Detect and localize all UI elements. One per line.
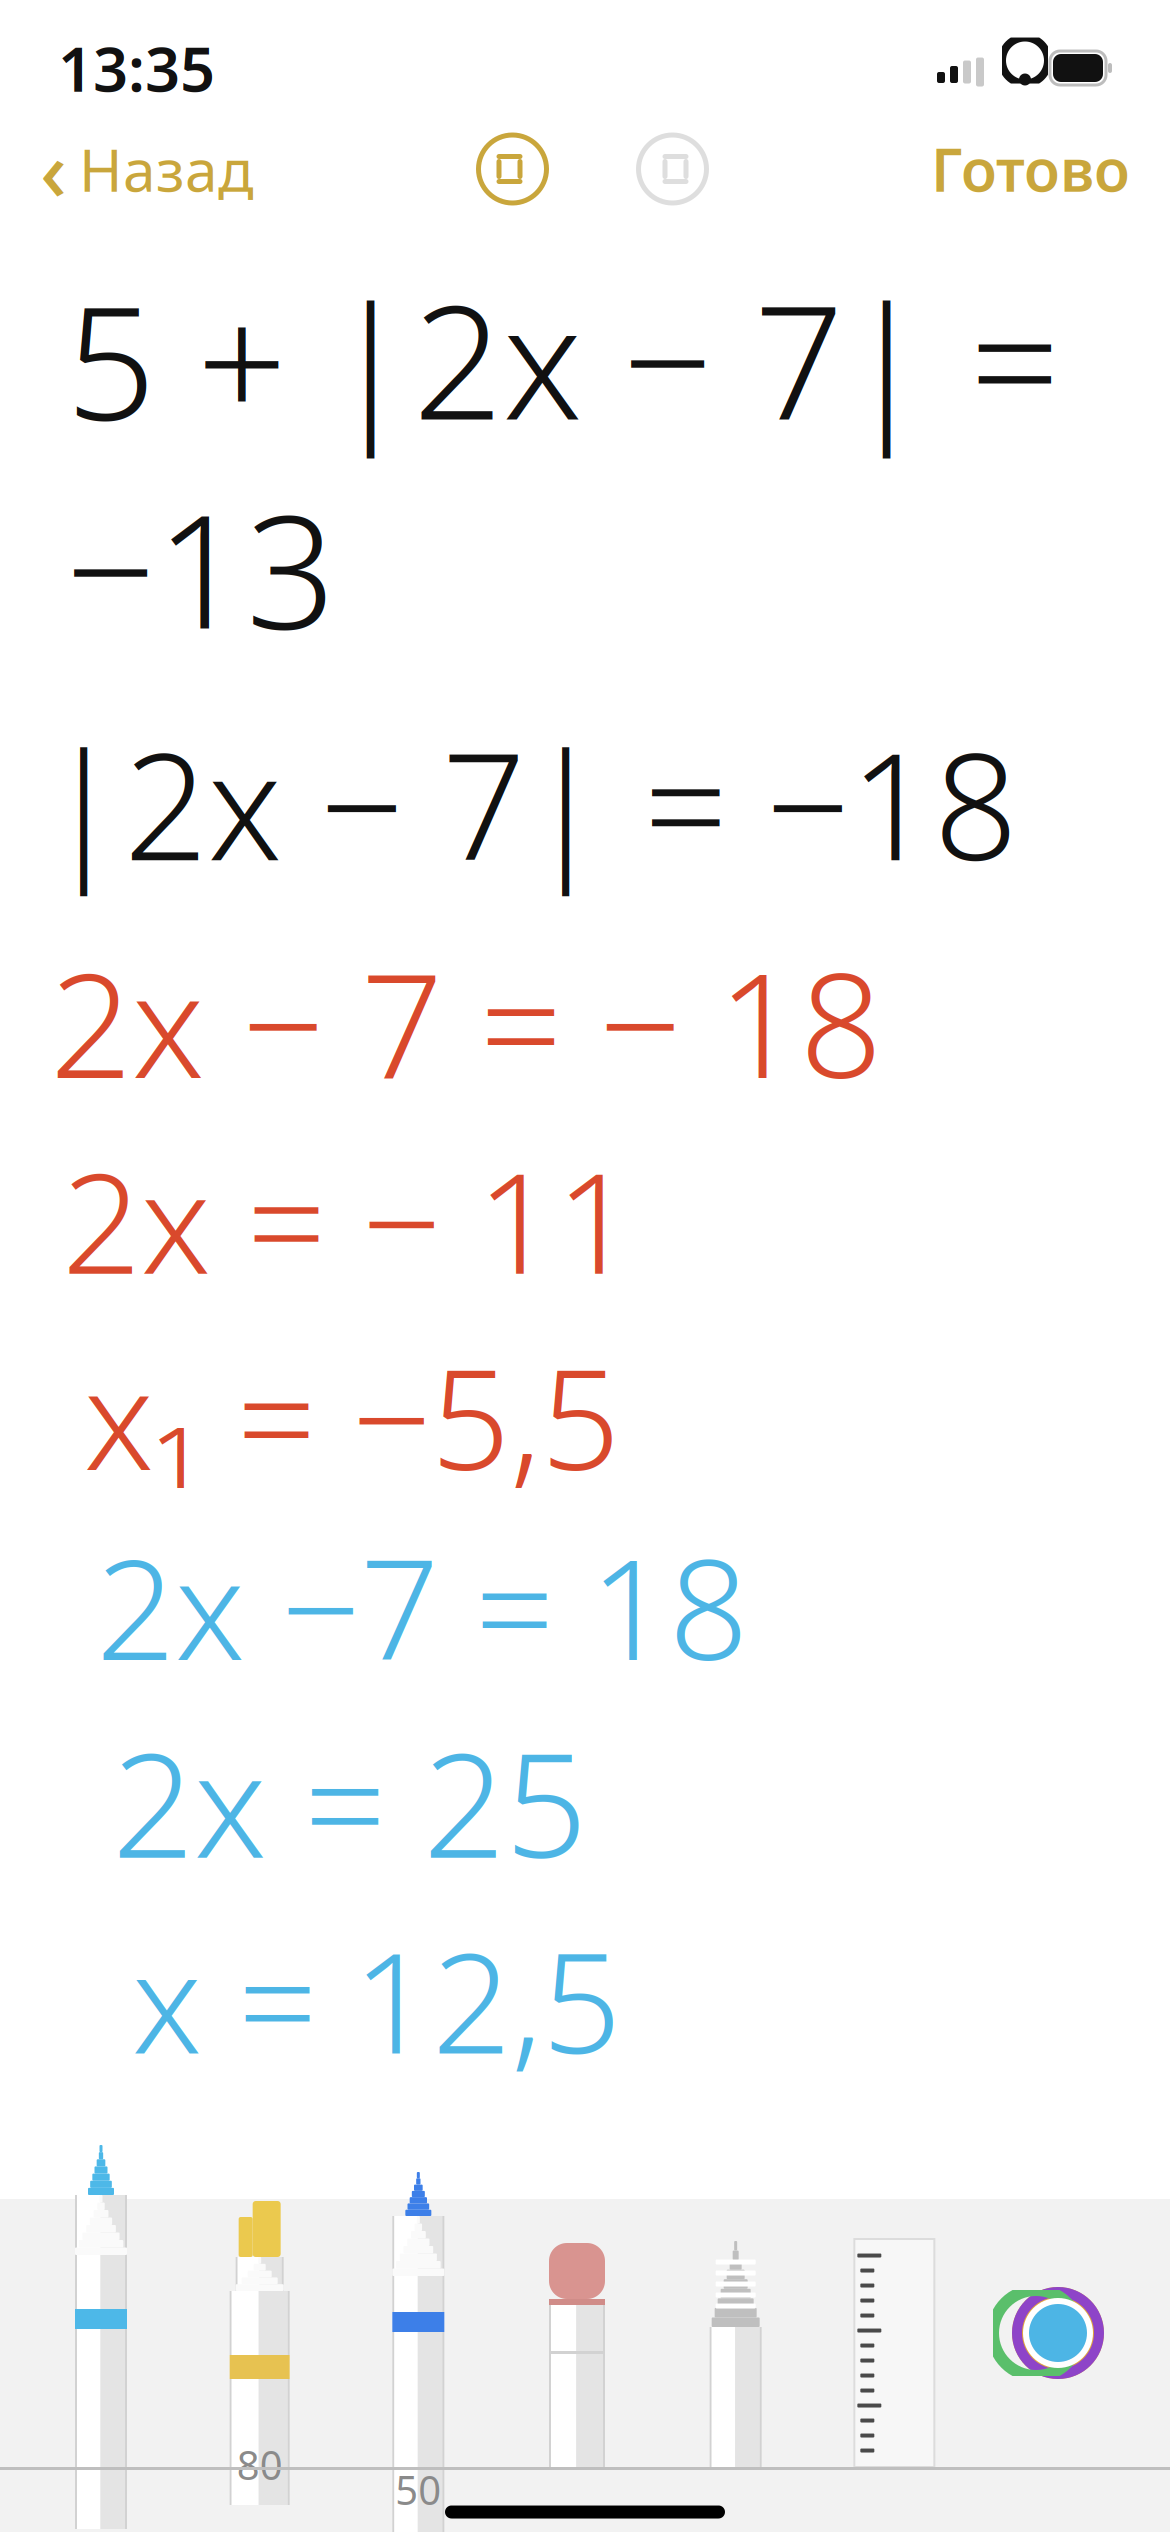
staticText: x₁ = −5,5 <box>84 1324 620 1508</box>
staticText: 2x = − 11 <box>62 1128 635 1312</box>
staticText: 13:35 <box>58 27 215 109</box>
button[interactable]: Лассо <box>693 2199 779 2467</box>
staticText: 80 <box>237 2438 283 2491</box>
staticText: x = 12,5 <box>132 1907 621 2092</box>
staticText: Готово <box>931 130 1130 208</box>
button[interactable]: Повторить <box>635 132 709 206</box>
staticText: 2x −7 = 18 <box>96 1514 748 1698</box>
staticText: Назад <box>79 130 254 208</box>
staticText: ‹ <box>40 114 67 224</box>
button[interactable]: Маркер <box>217 2199 303 2467</box>
button[interactable]: Карандаш <box>375 2199 461 2467</box>
button[interactable]: Ластик <box>534 2199 620 2467</box>
staticText: 5 + |2x − 7| = −13 <box>66 254 1060 672</box>
staticText: 50 <box>395 2463 441 2516</box>
button[interactable]: Линейка <box>851 2199 937 2467</box>
button[interactable]: Готово <box>927 120 1134 218</box>
staticText: 2x − 7 = − 18 <box>50 927 882 1118</box>
button[interactable]: Ручка <box>58 2199 144 2467</box>
button[interactable]: ‹ <box>36 104 258 234</box>
staticText: 2x = 25 <box>112 1706 587 1897</box>
staticText: |2x − 7| = −18 <box>44 706 1018 901</box>
button[interactable]: Цвет <box>1010 2285 1106 2381</box>
button[interactable]: Отменить <box>475 132 549 206</box>
